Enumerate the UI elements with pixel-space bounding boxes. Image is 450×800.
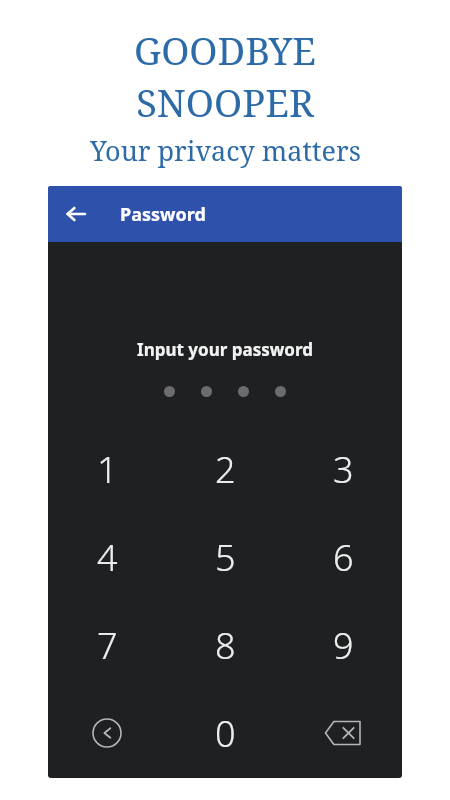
button[interactable]: Delete <box>284 689 402 777</box>
staticText: GOODBYE <box>134 24 316 76</box>
button[interactable]: 5 <box>166 513 284 601</box>
staticText: 6 <box>333 533 354 582</box>
button[interactable]: 1 <box>48 425 166 513</box>
staticText: 0 <box>215 709 236 758</box>
staticText: 3 <box>333 445 354 494</box>
staticText: 5 <box>215 533 236 582</box>
staticText: 2 <box>215 445 236 494</box>
button[interactable]: 4 <box>48 513 166 601</box>
staticText: Your privacy matters <box>90 132 361 169</box>
button[interactable]: 6 <box>284 513 402 601</box>
staticText: 8 <box>215 621 236 670</box>
button[interactable]: 7 <box>48 601 166 689</box>
button[interactable]: 9 <box>284 601 402 689</box>
staticText: 9 <box>333 621 354 670</box>
staticText: Password <box>120 202 206 227</box>
button[interactable]: Back <box>60 198 92 230</box>
button[interactable]: 3 <box>284 425 402 513</box>
staticText: 1 <box>97 445 118 494</box>
button[interactable]: 2 <box>166 425 284 513</box>
staticText: 7 <box>97 621 118 670</box>
staticText: 4 <box>97 533 118 582</box>
staticText: Input your password <box>137 338 313 361</box>
staticText: SNOOPER <box>136 76 314 128</box>
button[interactable]: 8 <box>166 601 284 689</box>
button[interactable]: Back <box>48 689 166 777</box>
button[interactable]: 0 <box>166 689 284 777</box>
